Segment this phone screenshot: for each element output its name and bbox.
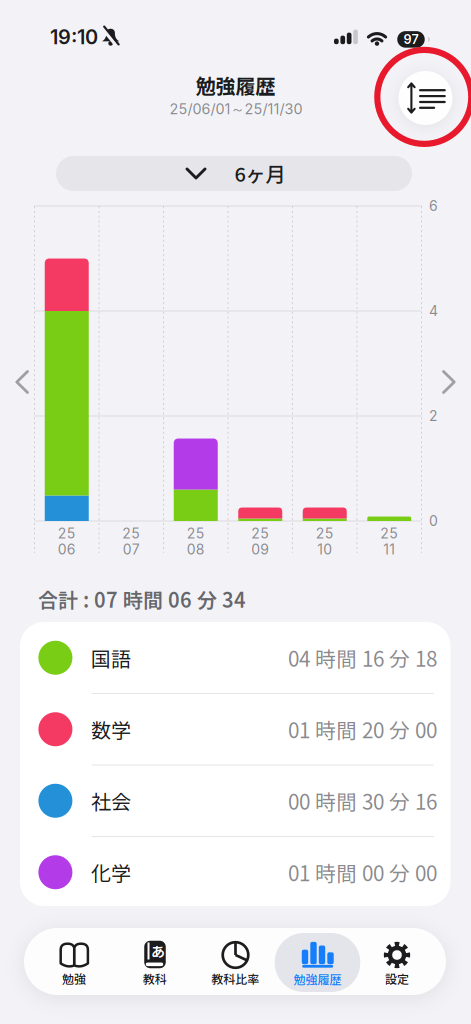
staticText: 勉強履歴 [195,70,275,99]
staticText: 教科比率 [211,970,259,987]
staticText: あ [151,941,165,961]
staticText: 07 [123,541,140,558]
staticText: 6 [429,197,438,214]
button[interactable]: 並び替え [398,71,452,125]
staticText: 教科 [143,970,167,987]
staticText: 25 [58,525,76,542]
staticText: 数学 [91,715,131,744]
staticText: 国語 [91,643,131,672]
button[interactable]: 6ヶ月 [56,156,412,191]
staticText: 設定 [385,970,409,987]
staticText: 6ヶ月 [234,158,285,187]
button[interactable]: 設定 [358,929,436,993]
staticText: 2 [429,407,438,424]
button[interactable]: 勉強履歴 [278,929,356,993]
button[interactable]: あ [116,929,194,993]
staticText: 19:10 [50,25,98,49]
staticText: 10 [317,541,332,558]
staticText: 25 [316,525,334,542]
staticText: 社会 [91,786,131,815]
button[interactable]: 次へ [427,352,471,412]
button[interactable]: 前へ [0,352,44,412]
button[interactable]: 勉強 [35,929,113,993]
staticText: 01 時間 20 分 00 [288,714,437,744]
staticText: 25 [122,525,140,542]
staticText: 勉強 [62,970,86,987]
staticText: 化学 [91,858,131,887]
staticText: 合計 : 07 時間 06 分 34 [38,584,246,613]
staticText: 04 時間 16 分 18 [288,643,437,673]
staticText: 09 [251,541,269,558]
staticText: 97 [403,32,418,47]
staticText: 01 時間 00 分 00 [288,857,437,887]
staticText: 25 [187,525,205,542]
staticText: 25 [251,525,269,542]
staticText: 06 [58,541,76,558]
staticText: 0 [429,512,438,529]
staticText: 11 [383,541,395,558]
staticText: 勉強履歴 [293,970,341,988]
staticText: 4 [429,302,438,319]
staticText: 25 [380,525,398,542]
staticText: 25/06/01～25/11/30 [169,100,302,119]
button[interactable]: 教科比率 [196,929,274,993]
staticText: 08 [187,541,205,558]
staticText: 00 時間 30 分 16 [288,786,437,816]
